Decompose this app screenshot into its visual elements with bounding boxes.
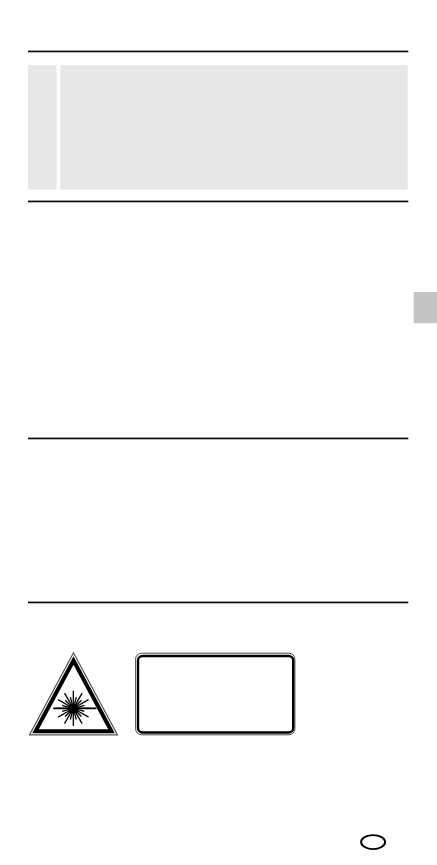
button[interactable]: Section tab xyxy=(413,291,437,324)
button[interactable]: Laser class label xyxy=(134,651,298,737)
button[interactable]: Specification table xyxy=(28,65,409,191)
button[interactable]: Laser radiation warning xyxy=(27,650,120,737)
button[interactable]: Page mark xyxy=(360,834,386,850)
